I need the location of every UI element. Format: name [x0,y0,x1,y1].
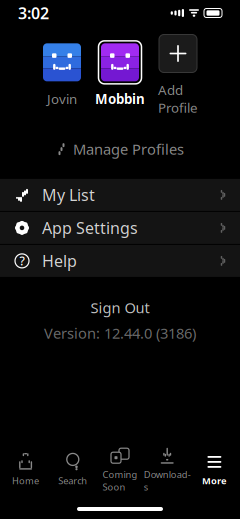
staticText: More [202,474,227,487]
staticText: Manage Profiles [73,139,184,159]
button[interactable]: Coming Soon [96,443,144,497]
button[interactable]: Jovin [33,41,91,108]
button[interactable]: ? [0,245,240,277]
button[interactable]: Home [2,449,49,491]
staticText: ? [19,253,24,269]
button[interactable]: My List [0,179,240,211]
staticText: Mobbin [95,90,145,108]
staticText: App Settings [42,217,138,238]
staticText: Downloads [144,468,191,493]
button[interactable]: App Settings [0,212,240,244]
staticText: Home [12,474,39,487]
staticText: 3:02 [18,2,49,24]
button[interactable]: Manage Profiles [40,132,200,166]
button[interactable]: Search [49,449,96,491]
staticText: Version: 12.44.0 (3186) [44,323,196,343]
button[interactable]: Mobbin [91,41,149,108]
button[interactable]: Add Profile [149,32,207,116]
staticText: My List [42,184,95,205]
staticText: Coming Soon [102,468,137,493]
button[interactable]: Sign Out [74,295,165,320]
button[interactable]: More [191,449,238,491]
staticText: Sign Out [90,298,149,317]
staticText: Help [42,250,77,271]
staticText: Jovin [47,90,77,108]
staticText: Add Profile [158,81,198,116]
button[interactable]: Downloads [144,443,191,497]
staticText: Search [58,474,87,487]
